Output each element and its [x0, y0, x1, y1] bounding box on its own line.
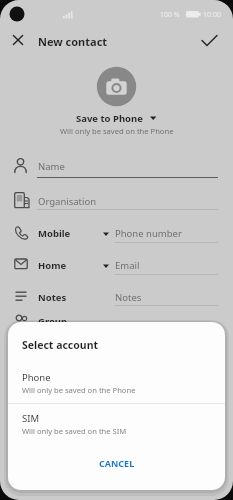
button[interactable]: Mobile — [0, 221, 115, 247]
button[interactable]: Email — [115, 253, 225, 279]
button[interactable]: CANCEL — [8, 448, 225, 478]
staticText: Home — [38, 259, 67, 272]
button[interactable] — [196, 30, 224, 52]
staticText: Save to Phone — [76, 112, 143, 125]
staticText: Notes — [38, 291, 67, 304]
button[interactable] — [96, 66, 137, 107]
staticText: Email — [115, 259, 140, 272]
button[interactable]: Home — [0, 253, 115, 279]
button[interactable]: Phone — [8, 366, 225, 403]
staticText: Select account — [22, 338, 99, 352]
staticText: Notes — [115, 291, 142, 304]
staticText: CANCEL — [99, 457, 135, 469]
button[interactable]: Phone number — [115, 221, 225, 247]
staticText: 10:00 — [203, 10, 221, 20]
staticText: Organisation — [38, 195, 97, 208]
staticText: Will only be saved on the SIM — [22, 426, 127, 436]
button[interactable] — [8, 32, 38, 52]
button[interactable]: Notes — [115, 285, 225, 311]
staticText: Mobile — [38, 227, 71, 240]
staticText: Group — [38, 315, 68, 328]
staticText: Phone — [22, 371, 51, 384]
staticText: New contact — [38, 34, 108, 49]
staticText: Name — [38, 160, 65, 173]
staticText: Phone number — [115, 227, 182, 240]
button[interactable]: Organisation — [0, 189, 233, 215]
staticText: Will only be saved on the Phone — [60, 126, 174, 136]
button[interactable]: Notes — [0, 285, 115, 311]
button[interactable]: Name — [0, 155, 233, 181]
staticText: SIM — [22, 412, 40, 425]
staticText: 100 % — [160, 10, 180, 20]
button[interactable]: SIM — [8, 406, 225, 443]
button[interactable]: Save to Phone — [0, 111, 233, 125]
staticText: Will only be saved on the Phone — [22, 385, 136, 395]
